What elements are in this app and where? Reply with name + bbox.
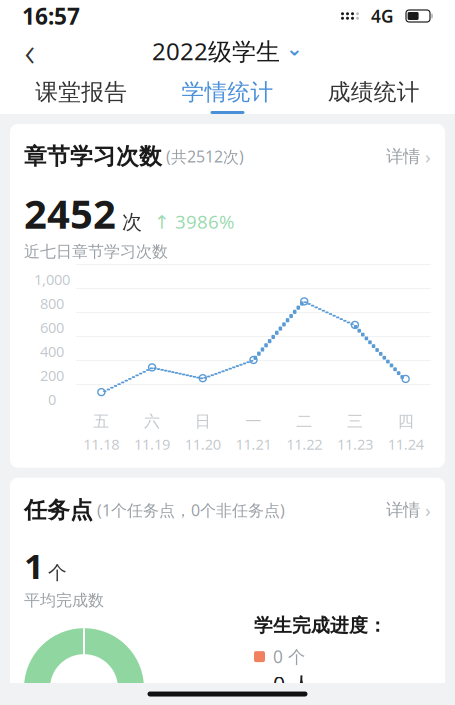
staticText: ⌄ xyxy=(286,37,303,60)
staticText: 11.21 xyxy=(235,434,271,454)
button[interactable]: 课堂报告 xyxy=(8,70,154,114)
button[interactable]: 2022级学生 xyxy=(146,32,309,70)
staticText: 11.20 xyxy=(185,434,221,454)
staticText: 六 xyxy=(144,412,160,431)
staticText: (1个任务点，0个非任务点) xyxy=(93,499,285,521)
staticText: 二 xyxy=(296,412,312,431)
button[interactable]: 详情 xyxy=(380,494,431,526)
staticText: 0 人 xyxy=(273,670,312,698)
staticText: › xyxy=(425,144,431,169)
staticText: 日 xyxy=(195,412,211,431)
staticText: 16:57 xyxy=(22,1,80,31)
staticText: 学情统计 xyxy=(181,78,273,106)
staticText: 1,000 xyxy=(34,270,70,289)
button[interactable]: 学情统计 xyxy=(154,70,301,114)
button[interactable]: 详情 xyxy=(380,140,431,173)
staticText: 四 xyxy=(398,412,414,431)
staticText: 11.24 xyxy=(388,434,424,454)
staticText: 600 xyxy=(40,318,64,337)
staticText: 0 个 xyxy=(273,645,305,668)
staticText: 三 xyxy=(347,412,363,431)
staticText: 次 xyxy=(122,210,142,234)
staticText: 2452 xyxy=(24,187,116,240)
staticText: 2022级学生 xyxy=(152,35,280,67)
staticText: 800 xyxy=(40,294,64,313)
staticText: ↑ 3986% xyxy=(154,209,235,234)
button[interactable]: 成绩统计 xyxy=(301,70,447,114)
staticText: ‹ xyxy=(24,24,35,77)
staticText: 课堂报告 xyxy=(35,78,127,106)
staticText: 详情 xyxy=(386,146,420,167)
staticText: 平均完成数 xyxy=(24,590,104,610)
staticText: 11.19 xyxy=(134,434,170,454)
staticText: (共2512次) xyxy=(162,146,244,167)
staticText: 详情 xyxy=(386,499,420,521)
staticText: 章节学习次数 xyxy=(24,142,162,170)
staticText: › xyxy=(425,498,431,522)
staticText: 个 xyxy=(48,561,67,584)
staticText: 400 xyxy=(40,342,64,361)
staticText: 11.22 xyxy=(286,434,322,454)
staticText: 4G xyxy=(371,4,394,27)
staticText: 一 xyxy=(245,412,261,431)
staticText: 0 xyxy=(48,390,56,409)
button[interactable]: Back xyxy=(8,32,52,70)
staticText: 1 xyxy=(24,542,44,588)
staticText: 任务点 xyxy=(24,496,93,524)
staticText: 成绩统计 xyxy=(328,78,420,106)
staticText: 近七日章节学习次数 xyxy=(24,242,168,262)
staticText: 11.23 xyxy=(337,434,373,454)
staticText: 学生完成进度： xyxy=(254,614,387,637)
staticText: 200 xyxy=(40,366,64,385)
staticText: 11.18 xyxy=(83,434,119,454)
staticText: 五 xyxy=(93,412,109,431)
